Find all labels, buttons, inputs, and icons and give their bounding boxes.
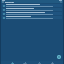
button[interactable]: Search [60, 1, 62, 3]
button[interactable]: Home [10, 62, 14, 64]
staticText: Alerts [38, 63, 41, 64]
staticText: Dashboard [5, 1, 60, 3]
button[interactable] [2, 12, 62, 15]
button[interactable]: Add [57, 55, 61, 59]
staticText: Profile [51, 63, 54, 64]
button[interactable] [2, 16, 62, 19]
staticText: Explore [23, 63, 27, 64]
button[interactable]: Profile [50, 62, 54, 64]
staticText: Home [11, 63, 14, 64]
button[interactable] [2, 4, 62, 7]
button[interactable]: Alerts [37, 62, 41, 64]
button[interactable]: Explore [23, 62, 27, 64]
button[interactable] [2, 8, 62, 11]
